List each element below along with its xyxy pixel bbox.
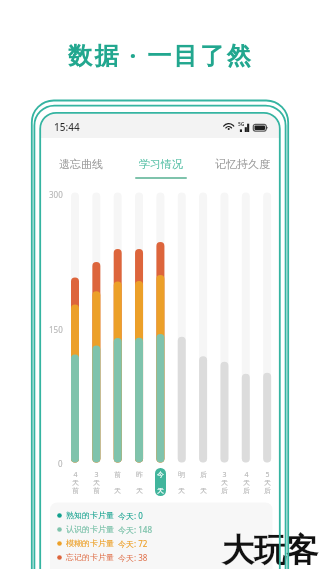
staticText: 熟知的卡片量 [66,510,114,520]
staticText: 今天: 72 [118,538,148,549]
staticText: 天 [93,478,100,487]
staticText: 3 [94,470,99,479]
staticText: 学习情况 [139,157,183,171]
button[interactable] [155,468,166,496]
staticText: 天 [72,478,79,487]
staticText: 天 [114,486,121,495]
staticText: 天 [243,478,250,487]
staticText: 认识的卡片量 [66,524,114,534]
staticText: 忘记的卡片量 [66,552,114,562]
staticText: 后 [200,470,207,479]
staticText: 今天: 148 [118,524,152,535]
staticText: 数据 · 一目了然 [68,38,253,71]
staticText: 记忆持久度 [215,157,270,171]
staticText: 4 [73,470,78,479]
button[interactable]: 模糊的卡片量 [55,536,148,550]
staticText: 昨 [136,470,143,479]
staticText: 4 [244,470,249,479]
staticText: 150 [49,324,63,335]
button[interactable]: 遗忘曲线 [40,152,122,182]
staticText: 5 [265,470,270,479]
staticText: 明 [178,470,185,479]
staticText: 天 [157,486,164,495]
staticText: 遗忘曲线 [59,157,103,171]
other: Status: wifi, signal, battery [224,120,270,134]
staticText: 前 [93,486,100,495]
staticText: 3 [222,470,227,479]
staticText: 天 [221,478,228,487]
button[interactable]: 记忆持久度 [202,152,283,182]
staticText: 今天: 38 [118,552,148,563]
staticText: 模糊的卡片量 [66,538,114,548]
staticText: 后 [243,486,250,495]
staticText: 300 [49,189,63,200]
staticText: 后 [221,486,228,495]
button[interactable]: 学习情况 [121,152,201,182]
staticText: 今 [157,470,164,479]
staticText: 0 [58,458,63,469]
button[interactable]: 认识的卡片量 [55,522,152,536]
staticText: 后 [264,486,271,495]
staticText: 前 [114,470,121,479]
staticText: 15:44 [54,120,80,134]
staticText: 前 [72,486,79,495]
staticText: 天 [136,486,143,495]
button[interactable]: 熟知的卡片量 [55,508,143,522]
staticText: 天 [264,478,271,487]
button[interactable]: 忘记的卡片量 [55,550,148,564]
staticText: 今天: 0 [118,510,143,521]
staticText: 大玩客 [222,530,318,569]
staticText: 天 [200,486,207,495]
staticText: 5G [238,121,245,128]
staticText: 天 [178,486,185,495]
